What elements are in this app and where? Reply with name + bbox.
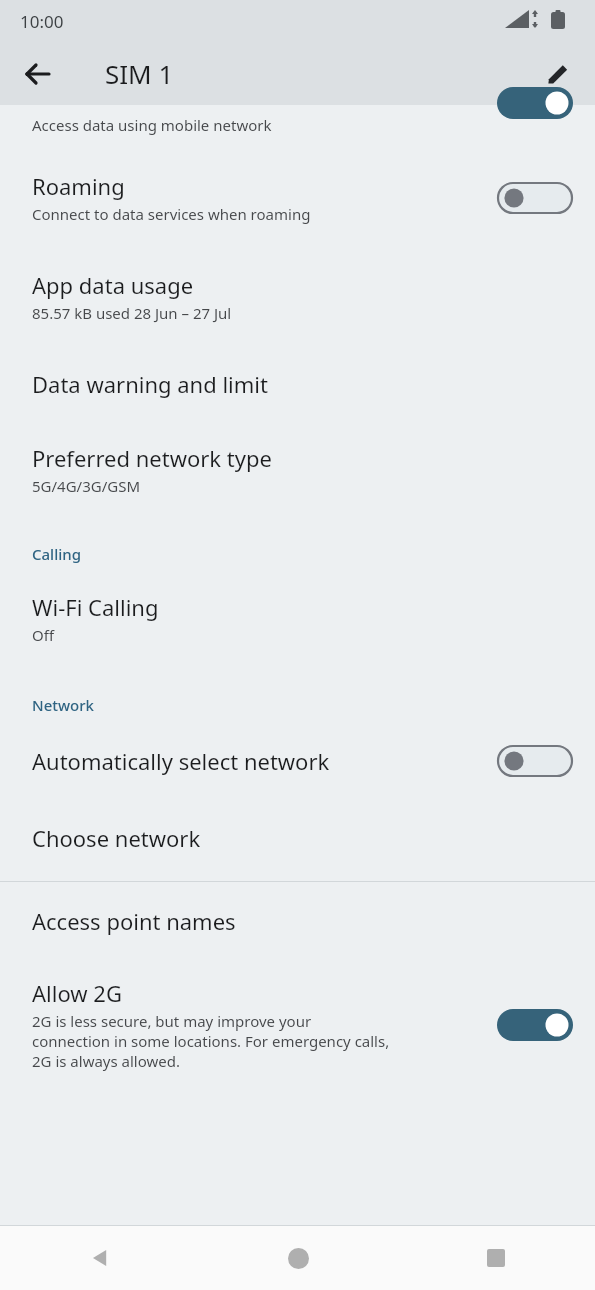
button[interactable]: Preferred network type [0,425,595,518]
button[interactable]: Back [0,1226,199,1290]
staticText: Preferred network type [32,443,272,473]
button[interactable]: Access point names [0,882,595,962]
staticText: Network [32,695,94,715]
staticText: Wi-Fi Calling [32,592,159,622]
staticText: SIM 1 [105,56,174,91]
button[interactable]: Data warning and limit [0,347,595,425]
button[interactable]: Home [199,1226,397,1290]
staticText: Connect to data services when roaming [32,204,311,224]
button[interactable]: Automatically select network [0,723,595,803]
staticText: Roaming [32,171,125,201]
button[interactable]: Edit [534,50,582,98]
button[interactable]: Back [14,50,62,98]
button[interactable]: Access data using mobile network [0,105,595,145]
staticText: 85.57 kB used 28 Jun – 27 Jul [32,303,232,323]
staticText: Allow 2G [32,978,122,1008]
button[interactable]: Recent apps [397,1226,595,1290]
button[interactable]: Allow 2G [0,962,595,1089]
staticText: 2G is less secure, but may improve your … [32,1011,390,1071]
button[interactable]: Choose network [0,803,595,881]
button[interactable]: App data usage [0,246,595,347]
staticText: 10:00 [20,10,64,33]
staticText: 5G/4G/3G/GSM [32,476,141,496]
staticText: Access data using mobile network [32,115,272,135]
staticText: Choose network [32,823,201,853]
staticText: Access point names [32,906,236,936]
staticText: Data warning and limit [32,369,268,399]
staticText: Calling [32,544,81,564]
staticText: Off [32,625,55,645]
staticText: App data usage [32,270,194,300]
staticText: Automatically select network [32,746,330,776]
button[interactable]: Wi-Fi Calling [0,572,595,669]
button[interactable]: Roaming [0,145,595,246]
